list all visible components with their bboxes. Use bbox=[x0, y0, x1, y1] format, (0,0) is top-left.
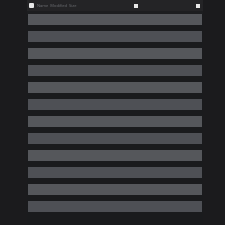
button[interactable] bbox=[27, 48, 203, 59]
button[interactable] bbox=[27, 65, 203, 76]
button[interactable] bbox=[27, 14, 203, 25]
button[interactable] bbox=[27, 201, 203, 212]
button[interactable]: Select all bbox=[27, 0, 203, 11]
button[interactable] bbox=[27, 184, 203, 195]
button[interactable]: Select all bbox=[29, 3, 34, 8]
button[interactable] bbox=[27, 99, 203, 110]
button[interactable] bbox=[27, 133, 203, 144]
button[interactable] bbox=[27, 116, 203, 127]
button[interactable] bbox=[27, 31, 203, 42]
button[interactable] bbox=[27, 150, 203, 161]
button[interactable] bbox=[27, 167, 203, 178]
button[interactable] bbox=[27, 82, 203, 93]
staticText: Name Modified Size bbox=[37, 3, 77, 8]
